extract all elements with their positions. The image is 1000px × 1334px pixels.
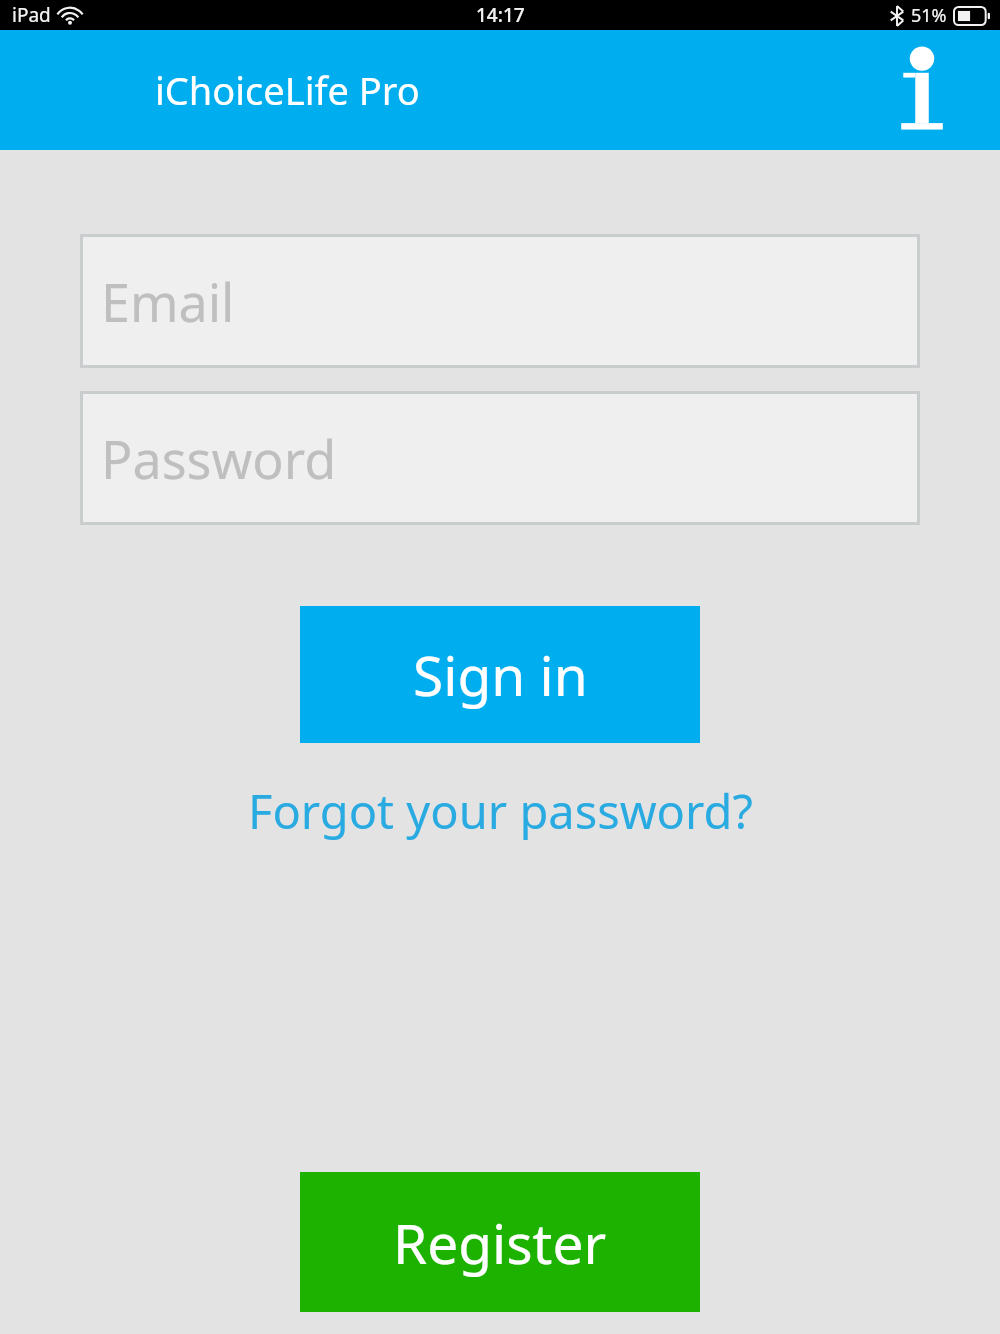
button[interactable]: Forgot your password? (248, 779, 753, 843)
staticText: Forgot your password? (248, 779, 753, 843)
button[interactable]: Register (300, 1172, 700, 1312)
staticText: Register (393, 1205, 607, 1280)
staticText: iChoiceLife Pro (155, 64, 420, 116)
button[interactable]: Email (80, 234, 920, 368)
staticText: 14:17 (476, 2, 525, 28)
staticText: iPad (12, 2, 51, 28)
staticText: Email (101, 266, 235, 337)
staticText: 51% (911, 3, 947, 28)
staticText: Sign in (413, 637, 588, 712)
button[interactable]: Sign in (300, 606, 700, 743)
button[interactable]: Password (80, 391, 920, 525)
button[interactable]: Information (892, 44, 952, 136)
staticText: Password (101, 423, 337, 494)
